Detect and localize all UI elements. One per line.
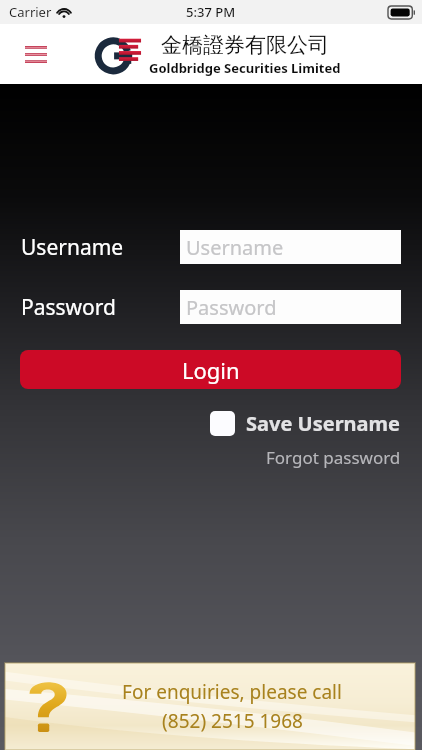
staticText: Carrier xyxy=(9,3,52,21)
button[interactable]: Password xyxy=(180,290,401,324)
button[interactable]: Menu xyxy=(14,32,58,76)
button[interactable]: Login xyxy=(20,350,401,389)
staticText: 金橋證券有限公司 xyxy=(161,32,329,58)
staticText: Password xyxy=(186,294,277,321)
staticText: (852) 2515 1968 xyxy=(162,708,303,734)
staticText: For enquiries, please call xyxy=(122,679,342,705)
button[interactable]: Username xyxy=(180,230,401,264)
staticText: 5:37 PM xyxy=(186,3,236,21)
staticText: Save Username xyxy=(246,410,401,437)
staticText: Password xyxy=(21,293,116,322)
staticText: Login xyxy=(182,355,240,385)
button[interactable]: Forgot password xyxy=(266,446,401,469)
staticText: Username xyxy=(21,233,124,262)
staticText: Username xyxy=(186,234,284,261)
button[interactable]: Save Username xyxy=(210,410,401,437)
button[interactable]: For enquiries, please call xyxy=(5,663,415,750)
staticText: Goldbridge Securities Limited xyxy=(149,59,341,77)
staticText: Forgot password xyxy=(266,446,401,469)
